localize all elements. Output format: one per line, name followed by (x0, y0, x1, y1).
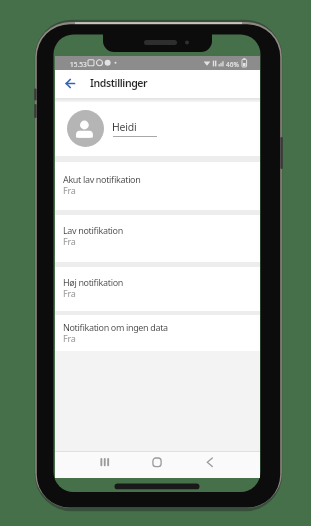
staticText: 46% (226, 60, 239, 69)
staticText: Fra (63, 332, 76, 344)
button[interactable]: Heidi (55, 102, 260, 156)
button[interactable] (97, 454, 113, 471)
staticText: Fra (63, 287, 76, 299)
button[interactable] (149, 454, 165, 471)
button[interactable]: Akut lav notifikation (55, 162, 260, 210)
staticText: Notifikation om ingen data (63, 321, 168, 333)
staticText: Heidi (112, 120, 137, 134)
button[interactable]: Høj notifikation (55, 267, 260, 311)
button[interactable] (202, 454, 218, 471)
staticText: Lav notifikation (63, 224, 123, 236)
staticText: 15.53 (70, 60, 87, 69)
button[interactable]: Notifikation om ingen data (55, 315, 260, 351)
staticText: Fra (63, 235, 76, 247)
staticText: Akut lav notifikation (63, 173, 141, 185)
button[interactable] (58, 73, 82, 94)
staticText: Fra (63, 184, 76, 196)
button[interactable]: Lav notifikation (55, 215, 260, 262)
staticText: Indstillinger (90, 76, 148, 90)
staticText: Høj notifikation (63, 276, 123, 288)
